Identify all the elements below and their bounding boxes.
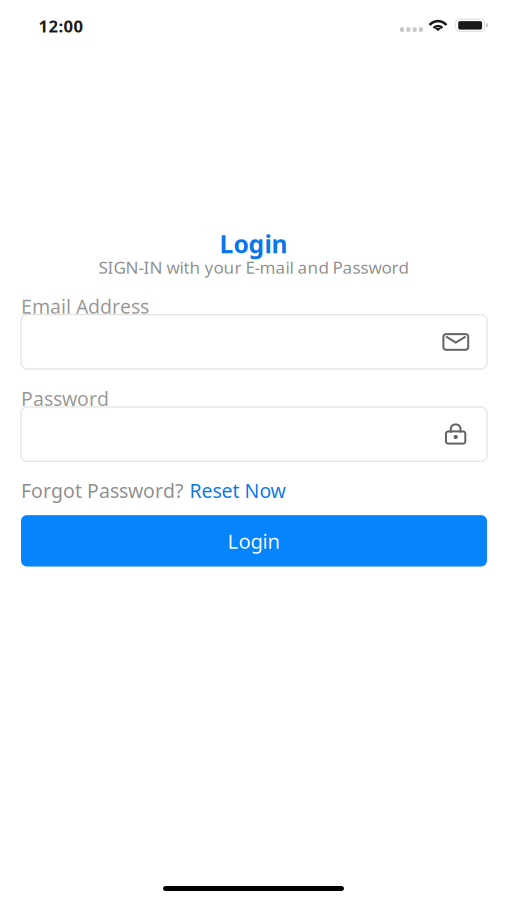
staticText: Reset Now bbox=[189, 477, 285, 504]
staticText: Login bbox=[219, 227, 287, 260]
button[interactable]: Login bbox=[21, 515, 487, 566]
staticText: Forgot Password? bbox=[21, 477, 183, 504]
button[interactable]: Reset Now bbox=[189, 477, 285, 504]
staticText: 12:00 bbox=[38, 15, 83, 37]
staticText: Email Address bbox=[21, 293, 149, 319]
staticText: Login bbox=[227, 527, 280, 555]
staticText: Password bbox=[21, 385, 109, 412]
staticText: SIGN-IN with your E-mail and Password bbox=[98, 255, 408, 279]
